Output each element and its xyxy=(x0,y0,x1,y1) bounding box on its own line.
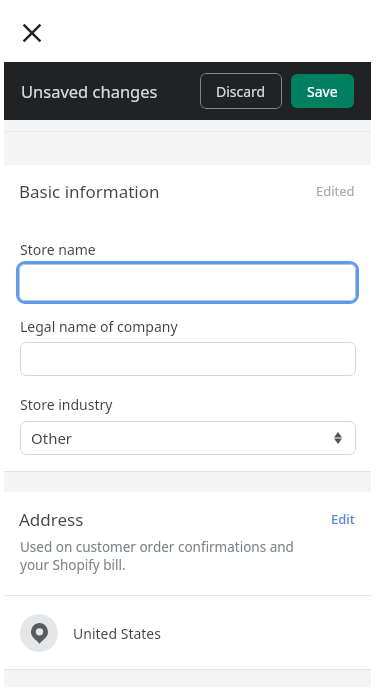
button[interactable]: Other xyxy=(20,421,356,455)
button[interactable]: Save xyxy=(291,74,354,108)
staticText: Save xyxy=(307,82,338,101)
button[interactable]: Close xyxy=(12,13,52,53)
button[interactable]: Discard xyxy=(200,73,282,109)
staticText: Other xyxy=(31,428,73,448)
staticText: Unsaved changes xyxy=(21,80,158,102)
staticText: Store industry xyxy=(20,395,113,414)
button[interactable] xyxy=(20,342,356,376)
staticText: Address xyxy=(19,508,84,531)
button[interactable]: Edit xyxy=(331,510,355,528)
staticText: Discard xyxy=(216,82,266,101)
staticText: Edited xyxy=(316,182,355,200)
staticText: Edit xyxy=(331,510,355,528)
staticText: Used on customer order confirmations and… xyxy=(20,538,294,574)
staticText: Legal name of company xyxy=(20,317,178,336)
button[interactable]: United States xyxy=(4,596,371,670)
button[interactable] xyxy=(19,264,356,301)
staticText: Store name xyxy=(20,240,96,259)
staticText: United States xyxy=(73,624,161,643)
staticText: Basic information xyxy=(19,180,160,203)
